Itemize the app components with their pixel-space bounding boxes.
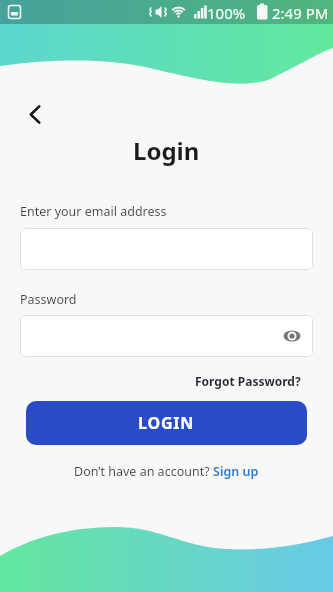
button[interactable]: [20, 315, 313, 357]
staticText: Login: [133, 134, 200, 167]
staticText: LOGIN: [138, 412, 195, 434]
button[interactable]: [22, 100, 50, 128]
button[interactable]: [20, 228, 313, 270]
staticText: Password: [20, 291, 77, 308]
staticText: Sign up: [213, 463, 259, 480]
staticText: 100%: [207, 3, 246, 23]
staticText: Enter your email address: [20, 203, 167, 220]
button[interactable]: Forgot Password?: [195, 373, 301, 389]
button[interactable]: Sign up: [213, 463, 259, 480]
button[interactable]: [273, 315, 313, 357]
staticText: Don’t have an account?: [74, 463, 213, 480]
staticText: Forgot Password?: [195, 373, 301, 389]
button[interactable]: LOGIN: [26, 401, 307, 445]
staticText: 2:49 PM: [272, 3, 329, 23]
